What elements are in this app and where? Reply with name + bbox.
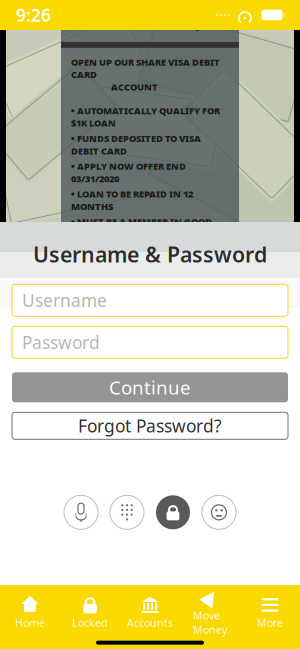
- button[interactable]: PIN keypad: [110, 495, 144, 529]
- staticText: Continue: [109, 375, 191, 400]
- button[interactable]: Move Money: [180, 583, 240, 641]
- staticText: IN NEED OF A $1,000?: [64, 12, 235, 33]
- button[interactable]: Face ID login: [202, 495, 236, 529]
- button[interactable]: Username: [12, 284, 288, 316]
- staticText: • FUNDS DEPOSITED TO VISA DEBIT CARD: [71, 132, 201, 157]
- button[interactable]: More: [240, 590, 300, 634]
- staticText: Accounts: [127, 615, 173, 630]
- staticText: • AUTOMATICALLY QUALIFY FOR $1K LOAN: [71, 104, 220, 129]
- staticText: Password: [22, 331, 100, 354]
- staticText: Forgot Password?: [78, 414, 222, 437]
- staticText: • LOAN TO BE REPAID IN 12 MONTHS: [71, 188, 193, 212]
- staticText: More: [257, 615, 283, 630]
- staticText: • MUST BE A MEMBER IN GOOD STANDING AND …: [71, 215, 212, 253]
- button[interactable]: Accounts: [120, 590, 180, 634]
- staticText: 9:26: [16, 3, 51, 26]
- button[interactable]: Locked login: [156, 495, 190, 529]
- button[interactable]: Locked: [60, 590, 120, 634]
- staticText: Username: [22, 289, 107, 312]
- staticText: OPEN UP OUR SHARE VISA DEBIT CARD ACCOUN…: [71, 56, 220, 93]
- staticText: • RATES BASED ON CREDIT REPORT: [71, 256, 228, 268]
- staticText: Home: [15, 615, 45, 630]
- button[interactable]: Voice login: [64, 495, 98, 529]
- button[interactable]: Forgot Password?: [12, 412, 288, 439]
- staticText: Move Money: [193, 608, 227, 637]
- staticText: Username & Password: [33, 240, 267, 268]
- button[interactable]: Continue: [12, 372, 288, 402]
- staticText: • APPLY NOW OFFER END 03/31/2020: [71, 160, 186, 185]
- button[interactable]: Password: [12, 326, 288, 358]
- button[interactable]: Home: [0, 590, 60, 634]
- staticText: Locked: [72, 615, 108, 630]
